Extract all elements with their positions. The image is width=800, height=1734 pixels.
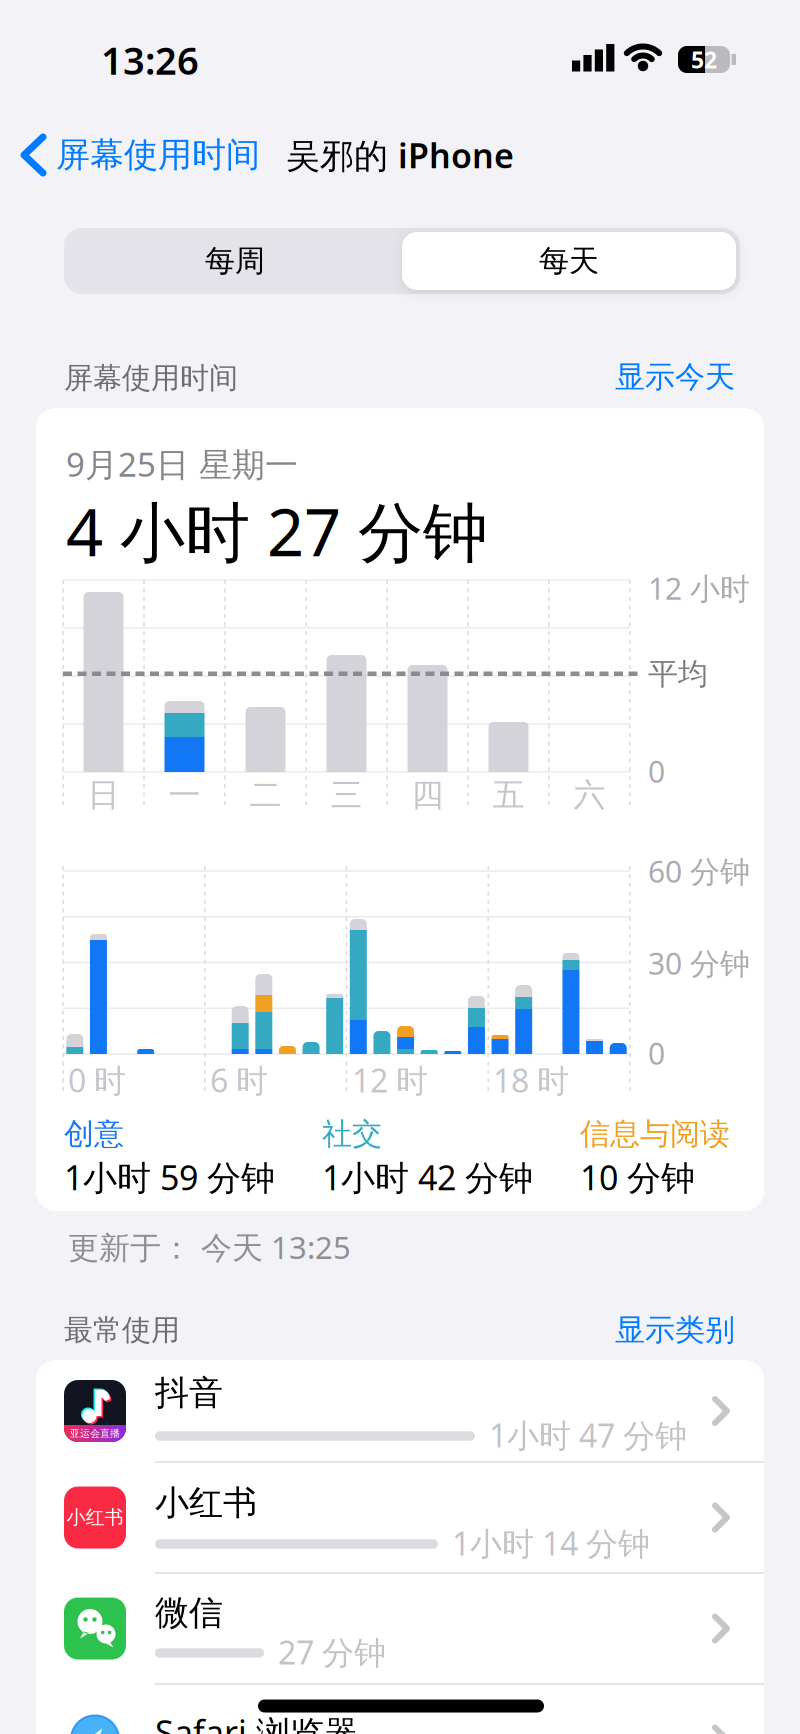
staticText: 27 分钟 bbox=[278, 1630, 386, 1674]
staticText: 4 小时 27 分钟 bbox=[66, 487, 488, 575]
staticText: 0 bbox=[648, 751, 665, 791]
staticText: 五 bbox=[492, 775, 524, 815]
staticText: 1小时 47 分钟 bbox=[489, 1413, 687, 1457]
staticText: 30 分钟 bbox=[648, 943, 750, 983]
button[interactable]: 显示类别 bbox=[615, 1311, 735, 1349]
staticText: 小红书 bbox=[66, 1505, 123, 1529]
staticText: 三 bbox=[330, 775, 362, 815]
staticText: 12 小时 bbox=[648, 568, 750, 608]
staticText: 1小时 42 分钟 bbox=[322, 1154, 533, 1200]
staticText: Safari 浏览器 bbox=[155, 1709, 358, 1734]
staticText: 显示今天 bbox=[615, 358, 735, 396]
staticText: 12 时 bbox=[352, 1058, 428, 1102]
button[interactable]: 显示今天 bbox=[615, 358, 735, 396]
staticText: 显示类别 bbox=[615, 1311, 735, 1349]
button[interactable]: 微信 bbox=[36, 1573, 764, 1684]
staticText: 吴邪的 iPhone bbox=[286, 132, 514, 178]
staticText: 每天 bbox=[539, 242, 599, 280]
staticText: 信息与阅读 bbox=[580, 1115, 730, 1153]
staticText: 18 时 bbox=[493, 1058, 569, 1102]
button[interactable]: 每周 bbox=[70, 232, 400, 290]
staticText: 屏幕使用时间 bbox=[56, 134, 260, 176]
button[interactable]: 亚运会直播 bbox=[36, 1360, 764, 1462]
staticText: 更新于： 今天 13:25 bbox=[68, 1226, 351, 1268]
staticText: 亚运会直播 bbox=[70, 1427, 120, 1440]
staticText: 四 bbox=[411, 775, 443, 815]
staticText: 二 bbox=[249, 775, 281, 815]
button[interactable]: Back bbox=[20, 133, 260, 177]
staticText: 社交 bbox=[322, 1115, 382, 1153]
staticText: 一 bbox=[168, 775, 200, 815]
staticText: 10 分钟 bbox=[580, 1154, 695, 1200]
staticText: 0 时 bbox=[68, 1058, 126, 1102]
staticText: 0 bbox=[648, 1033, 665, 1073]
staticText: 日 bbox=[87, 775, 119, 815]
staticText: 屏幕使用时间 bbox=[64, 360, 238, 396]
button[interactable]: 小红书 bbox=[36, 1462, 764, 1573]
staticText: 最常使用 bbox=[64, 1312, 180, 1348]
staticText: 创意 bbox=[64, 1115, 124, 1153]
staticText: 六 bbox=[573, 775, 605, 815]
staticText: 1小时 14 分钟 bbox=[452, 1521, 650, 1565]
button[interactable]: 每天 bbox=[402, 232, 736, 290]
staticText: 小红书 bbox=[155, 1482, 257, 1524]
staticText: 13:26 bbox=[101, 34, 199, 86]
staticText: 每周 bbox=[205, 242, 265, 280]
staticText: 6 时 bbox=[210, 1058, 268, 1102]
staticText: 平均 bbox=[648, 655, 708, 693]
staticText: 52 bbox=[691, 44, 717, 75]
staticText: 微信 bbox=[155, 1592, 223, 1634]
staticText: 9月25日 星期一 bbox=[66, 441, 298, 486]
staticText: 1小时 59 分钟 bbox=[64, 1154, 275, 1200]
staticText: 60 分钟 bbox=[648, 851, 750, 891]
staticText: 抖音 bbox=[155, 1372, 223, 1414]
button[interactable]: Safari 浏览器 bbox=[36, 1684, 764, 1734]
